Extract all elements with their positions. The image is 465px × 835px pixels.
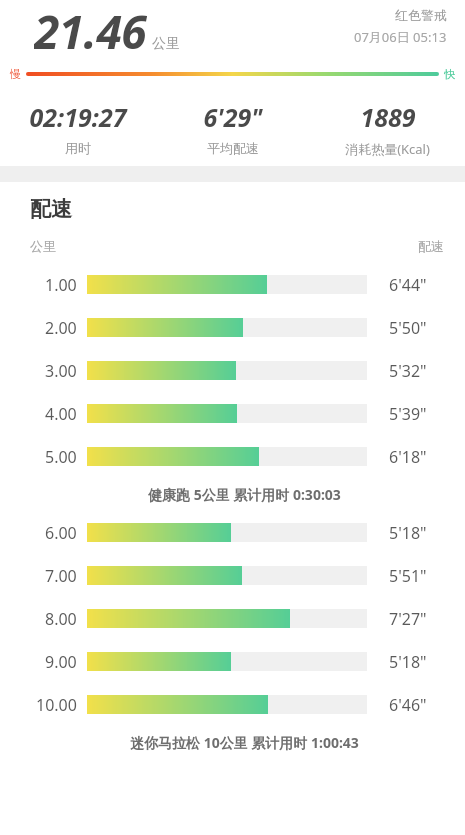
staticText: 6'44" [389,274,427,296]
staticText: 7.00 [45,565,77,587]
button[interactable]: 健康跑 5公里 累计用时 0:30:03 [0,478,465,511]
staticText: 6'29" [203,100,263,134]
staticText: 8.00 [45,608,77,630]
staticText: 6'18" [389,446,427,468]
staticText: 5'18" [389,651,427,673]
button[interactable]: 7.00 [0,554,465,597]
staticText: 慢 [10,67,21,81]
staticText: 5.00 [45,446,77,468]
staticText: 9.00 [45,651,77,673]
staticText: 5'51" [389,565,427,587]
staticText: 21.46 [34,0,147,60]
staticText: 快 [444,67,455,81]
staticText: 07月06日 05:13 [354,28,447,46]
button[interactable]: 6.00 [0,511,465,554]
button[interactable]: 4.00 [0,392,465,435]
button[interactable]: 9.00 [0,640,465,683]
staticText: 公里 [30,238,56,254]
button[interactable]: 5.00 [0,435,465,478]
staticText: 红色警戒 [395,7,447,23]
staticText: 5'39" [389,403,427,425]
staticText: 5'50" [389,317,427,339]
staticText: 平均配速 [207,140,259,156]
staticText: 健康跑 5公里 累计用时 0:30:03 [148,485,341,504]
button[interactable]: 迷你马拉松 10公里 累计用时 1:00:43 [0,726,465,759]
staticText: 配速 [30,196,72,222]
staticText: 10.00 [36,694,77,716]
button[interactable]: 1.00 [0,263,465,306]
staticText: 用时 [65,140,91,156]
staticText: 7'27" [389,608,427,630]
button[interactable]: 2.00 [0,306,465,349]
staticText: 3.00 [45,360,77,382]
staticText: 迷你马拉松 10公里 累计用时 1:00:43 [130,733,359,752]
staticText: 2.00 [45,317,77,339]
staticText: 5'32" [389,360,427,382]
button[interactable]: 8.00 [0,597,465,640]
staticText: 公里 [152,35,180,53]
staticText: 6'46" [389,694,427,716]
button[interactable]: 3.00 [0,349,465,392]
staticText: 5'18" [389,522,427,544]
staticText: 1889 [360,100,416,134]
staticText: 02:19:27 [29,100,127,134]
staticText: 1.00 [45,274,77,296]
staticText: 6.00 [45,522,77,544]
staticText: 消耗热量(Kcal) [345,140,430,158]
staticText: 配速 [418,238,444,254]
staticText: 4.00 [45,403,77,425]
button[interactable]: 10.00 [0,683,465,726]
